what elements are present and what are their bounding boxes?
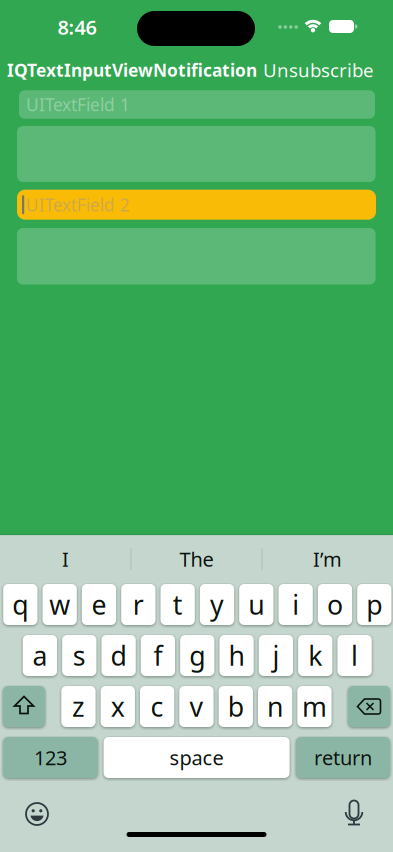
staticText: space xyxy=(170,744,224,771)
button[interactable]: f xyxy=(141,635,175,676)
button[interactable]: s xyxy=(62,635,96,676)
button[interactable]: i xyxy=(278,584,313,625)
button[interactable]: h xyxy=(219,635,254,676)
staticText: v xyxy=(189,689,203,724)
button[interactable]: a xyxy=(23,635,57,676)
button[interactable]: b xyxy=(219,686,253,727)
button[interactable]: v xyxy=(179,686,214,727)
staticText: q xyxy=(12,587,28,622)
button[interactable]: UITextField 2 xyxy=(17,190,376,220)
button[interactable] xyxy=(23,800,51,828)
staticText: k xyxy=(308,638,322,673)
staticText: t xyxy=(173,587,183,622)
staticText: j xyxy=(272,638,279,673)
staticText: u xyxy=(248,587,264,622)
button[interactable]: k xyxy=(298,635,332,676)
staticText: IQTextInputViewNotification xyxy=(7,58,257,81)
staticText: o xyxy=(327,587,343,622)
button[interactable]: x xyxy=(101,686,135,727)
staticText: b xyxy=(228,689,244,724)
staticText: x xyxy=(111,689,125,724)
button[interactable]: 123 xyxy=(3,737,98,778)
button[interactable]: return xyxy=(296,737,390,778)
button[interactable]: Unsubscribe xyxy=(263,58,374,82)
button[interactable]: t xyxy=(160,584,195,625)
staticText: w xyxy=(49,587,70,622)
button[interactable]: z xyxy=(61,686,96,727)
button[interactable]: q xyxy=(3,584,37,625)
button[interactable]: I’m xyxy=(265,539,389,579)
button[interactable]: n xyxy=(258,686,292,727)
button[interactable]: I xyxy=(3,539,127,579)
staticText: n xyxy=(267,689,283,724)
staticText: d xyxy=(111,638,127,673)
staticText: return xyxy=(314,744,372,771)
button[interactable]: m xyxy=(297,686,332,727)
button[interactable] xyxy=(3,686,45,727)
staticText: a xyxy=(32,638,47,673)
button[interactable]: space xyxy=(104,737,290,778)
button[interactable]: w xyxy=(42,584,77,625)
staticText: z xyxy=(72,689,85,724)
button[interactable] xyxy=(17,228,376,285)
staticText: 8:46 xyxy=(57,14,96,40)
button[interactable]: o xyxy=(318,584,352,625)
button[interactable]: r xyxy=(121,584,155,625)
staticText: I xyxy=(62,546,69,572)
staticText: c xyxy=(151,689,164,724)
staticText: y xyxy=(210,587,224,622)
button[interactable]: j xyxy=(259,635,293,676)
staticText: 123 xyxy=(34,744,67,771)
staticText: s xyxy=(73,638,86,673)
staticText: l xyxy=(351,638,358,673)
button[interactable]: l xyxy=(337,635,372,676)
button[interactable]: e xyxy=(82,584,116,625)
staticText: UITextField 2 xyxy=(26,193,130,216)
staticText: The xyxy=(179,546,213,572)
staticText: UITextField 1 xyxy=(26,93,130,116)
button[interactable] xyxy=(340,800,368,828)
staticText: p xyxy=(366,587,382,622)
button[interactable]: d xyxy=(101,635,136,676)
staticText: g xyxy=(189,638,205,673)
staticText: r xyxy=(133,587,144,622)
button[interactable]: u xyxy=(239,584,273,625)
staticText: e xyxy=(91,587,106,622)
staticText: i xyxy=(292,587,299,622)
button[interactable]: UITextField 1 xyxy=(19,90,375,119)
staticText: I’m xyxy=(313,546,342,572)
staticText: m xyxy=(302,689,327,724)
button[interactable] xyxy=(348,686,390,727)
staticText: h xyxy=(229,638,245,673)
button[interactable]: y xyxy=(200,584,234,625)
button[interactable]: c xyxy=(140,686,174,727)
staticText: Unsubscribe xyxy=(263,58,374,82)
button[interactable]: g xyxy=(180,635,214,676)
staticText: f xyxy=(153,638,162,673)
button[interactable]: The xyxy=(134,539,258,579)
button[interactable]: p xyxy=(357,584,391,625)
